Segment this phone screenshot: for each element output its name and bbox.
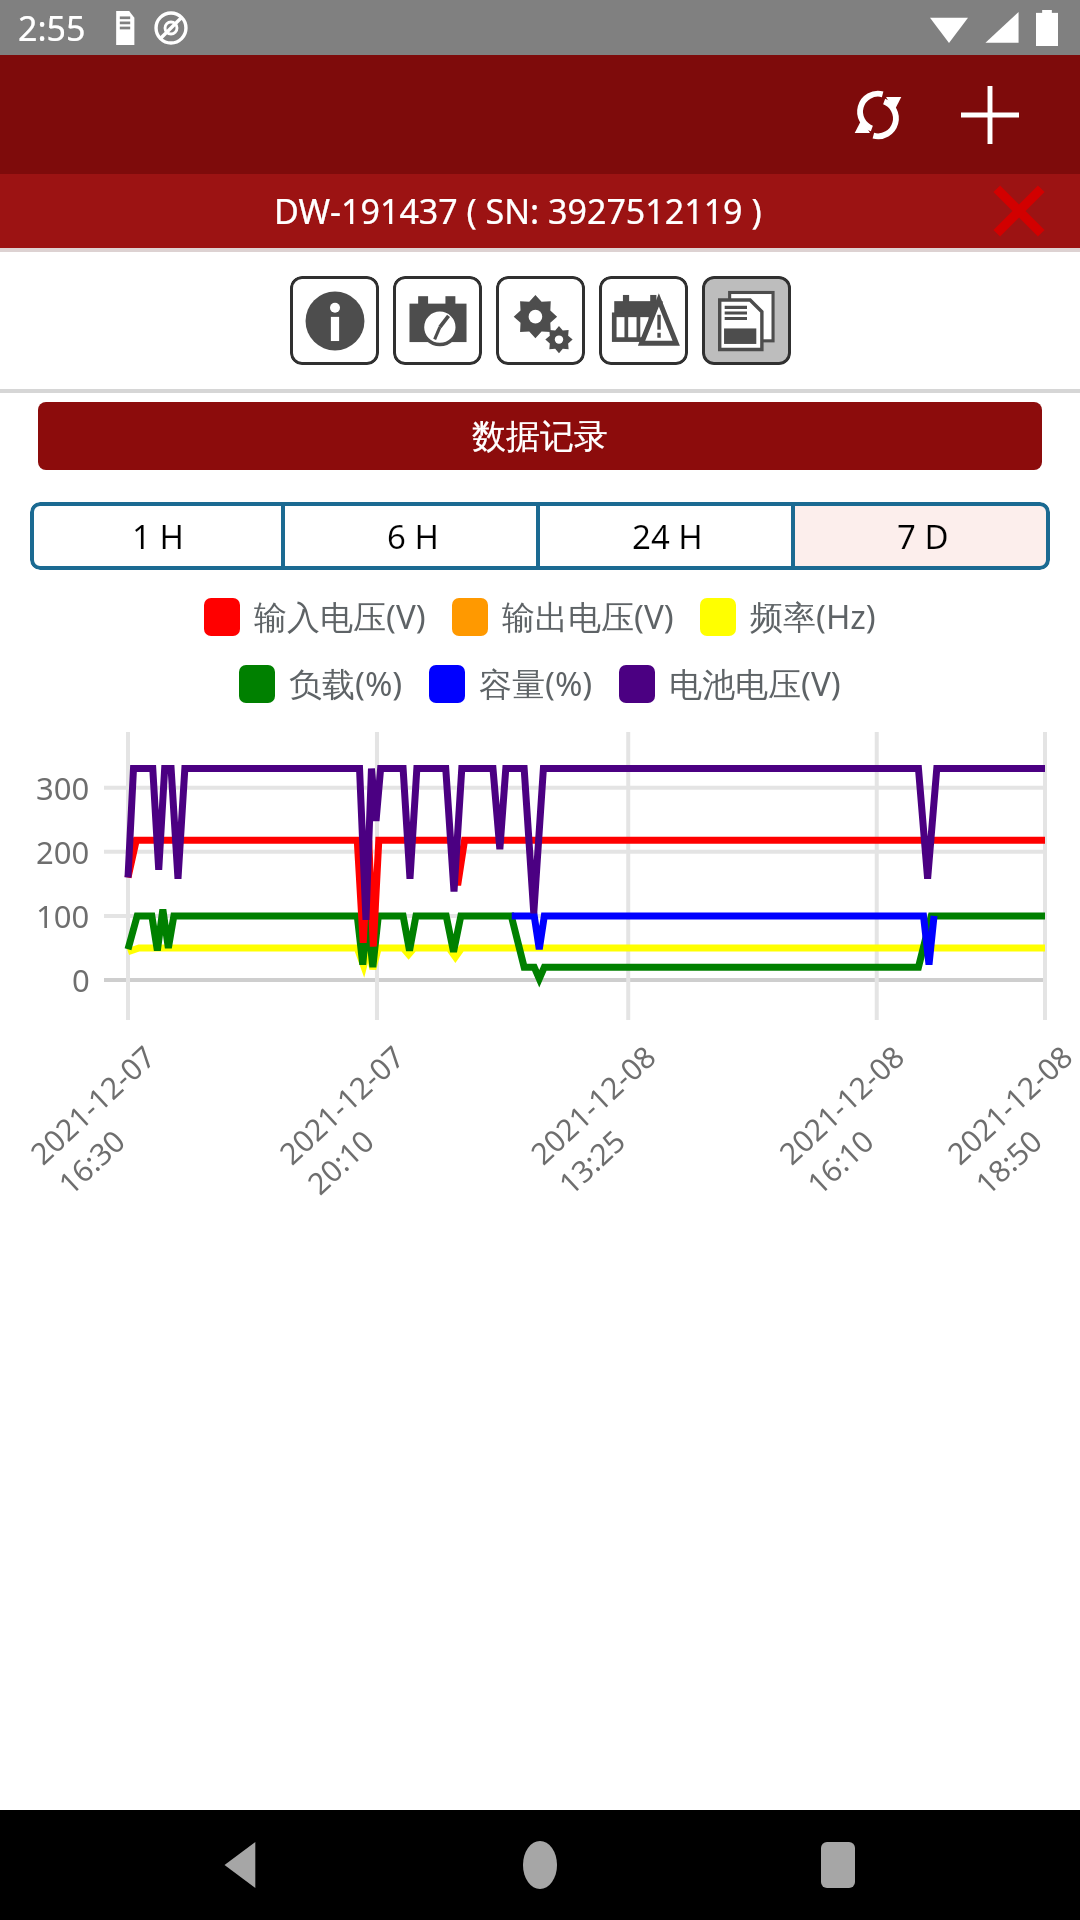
- button[interactable]: Back: [188, 1810, 298, 1920]
- staticText: DW-191437 ( SN: 3927512119 ): [274, 188, 762, 234]
- button[interactable]: Settings: [496, 276, 585, 365]
- button[interactable]: Information: [290, 276, 379, 365]
- button[interactable]: Add: [934, 59, 1046, 171]
- staticText: 电池电压(V): [669, 661, 841, 706]
- button[interactable]: 7 D: [795, 502, 1050, 570]
- staticText: 1 H: [132, 514, 184, 559]
- staticText: 6 H: [387, 514, 439, 559]
- staticText: 频率(Hz): [750, 594, 876, 639]
- button[interactable]: Home: [485, 1810, 595, 1920]
- button[interactable]: Close: [976, 174, 1062, 248]
- button[interactable]: Recent apps: [783, 1810, 893, 1920]
- button[interactable]: 1 H: [30, 502, 285, 570]
- staticText: 负载(%): [289, 661, 403, 706]
- button[interactable]: Monitor: [393, 276, 482, 365]
- button[interactable]: 数据记录: [38, 402, 1042, 470]
- staticText: 24 H: [632, 514, 703, 559]
- button[interactable]: 6 H: [285, 502, 540, 570]
- staticText: 容量(%): [479, 661, 593, 706]
- button[interactable]: 24 H: [540, 502, 795, 570]
- staticText: 2:55: [18, 5, 86, 51]
- button[interactable]: Data log: [702, 276, 791, 365]
- staticText: 输出电压(V): [502, 594, 674, 639]
- staticText: 7 D: [897, 514, 949, 559]
- button[interactable]: Event log: [599, 276, 688, 365]
- button[interactable]: Refresh: [822, 59, 934, 171]
- staticText: 输入电压(V): [254, 594, 426, 639]
- staticText: 数据记录: [472, 415, 608, 458]
